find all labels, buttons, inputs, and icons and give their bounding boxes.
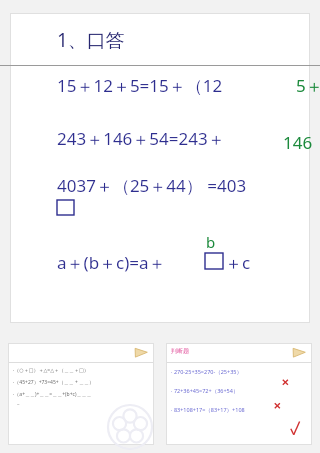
button[interactable]: Play slide xyxy=(166,343,312,445)
staticText: 243＋146＋54=243＋ xyxy=(57,127,225,150)
staticText: 5＋ xyxy=(296,74,320,97)
staticText: 15＋12＋5=15＋（12 xyxy=(57,74,223,97)
button[interactable]: Play slide xyxy=(134,347,148,358)
button[interactable] xyxy=(10,13,310,323)
staticText: · 83+108+17=（83+17）+108 xyxy=(171,406,245,414)
staticText: ·（45+27）+73=45+（＿＿ + ＿＿） xyxy=(13,379,95,386)
staticText: b xyxy=(206,232,216,252)
button[interactable]: Play slide xyxy=(8,343,154,445)
staticText: ＋c xyxy=(225,251,251,274)
staticText: 判断题 xyxy=(171,347,189,355)
staticText: － xyxy=(13,401,21,408)
staticText: · 72+36+45=72+（36+54） xyxy=(171,387,239,395)
button[interactable]: Play slide xyxy=(292,347,306,358)
staticText: 146 xyxy=(283,131,313,154)
staticText: a＋(b＋c)=a＋ xyxy=(57,251,166,274)
staticText: ·（○＋□）＋△=△＋（＿＿＋□） xyxy=(13,367,89,374)
staticText: ·（a+＿＿)+＿＿=＿＿+(b+c)＿＿＿ xyxy=(13,391,92,398)
staticText: · 270-25+35=270-（25+35） xyxy=(171,368,242,376)
staticText: 4037＋（25＋44） =403 xyxy=(57,174,247,197)
staticText: 1、口答 xyxy=(57,27,125,53)
